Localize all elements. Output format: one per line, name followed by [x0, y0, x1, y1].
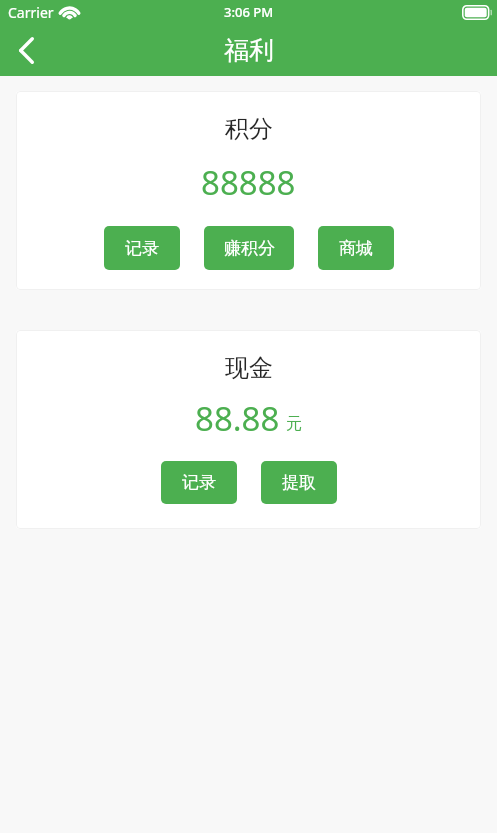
staticText: 积分: [225, 114, 273, 144]
staticText: 88888: [201, 160, 296, 205]
staticText: 88.88: [195, 396, 280, 441]
button[interactable]: 商城: [318, 226, 394, 270]
button[interactable]: 记录: [161, 461, 237, 504]
staticText: 福利: [224, 35, 274, 66]
staticText: 记录: [125, 238, 159, 259]
button[interactable]: 记录: [104, 226, 180, 270]
button[interactable]: Back: [0, 24, 52, 76]
staticText: Carrier: [8, 3, 54, 22]
staticText: 现金: [225, 353, 273, 383]
staticText: 元: [286, 414, 302, 434]
button[interactable]: 赚积分: [204, 226, 294, 270]
staticText: 3:06 PM: [224, 3, 274, 21]
staticText: 赚积分: [224, 238, 275, 259]
staticText: 商城: [339, 238, 373, 259]
button[interactable]: 提取: [261, 461, 337, 504]
staticText: 提取: [282, 472, 316, 493]
staticText: 记录: [182, 472, 216, 493]
